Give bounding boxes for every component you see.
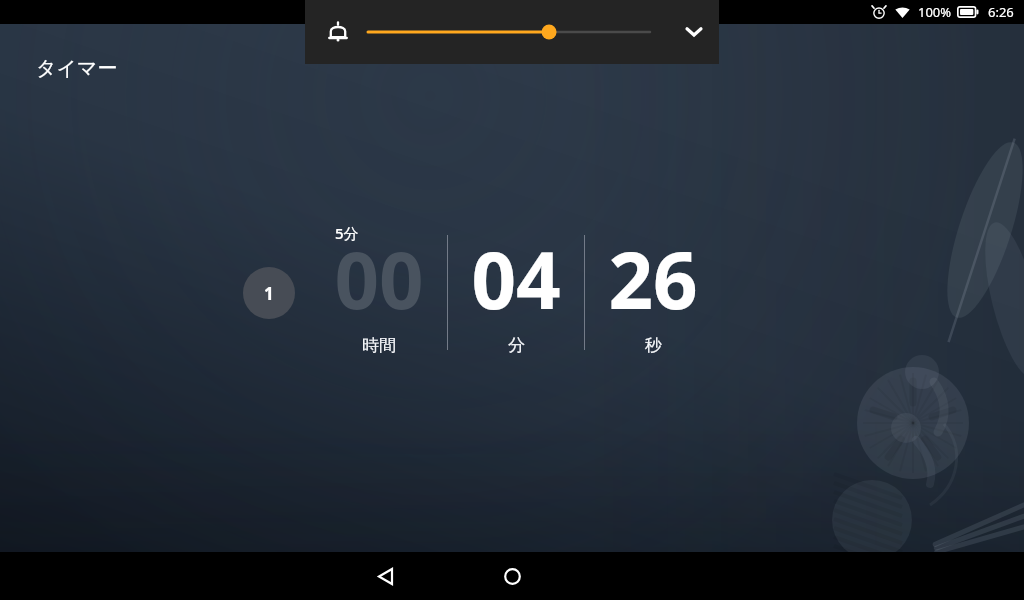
button[interactable]: Ring mode (322, 16, 354, 48)
staticText: 26 (608, 226, 698, 332)
button[interactable]: Home (488, 552, 536, 600)
staticText: 00 (334, 226, 424, 332)
button[interactable]: 04 (426, 226, 606, 356)
staticText: 04 (471, 226, 561, 332)
staticText: 1 (264, 282, 274, 305)
button[interactable]: Expand volume settings (678, 16, 710, 48)
button[interactable]: Volume (360, 14, 660, 50)
button[interactable]: Back (361, 552, 409, 600)
staticText: 時間 (362, 335, 396, 356)
staticText: 6:26 (988, 3, 1014, 21)
staticText: 秒 (645, 335, 662, 356)
button[interactable]: 1 (243, 267, 295, 319)
staticText: 分 (508, 335, 525, 356)
staticText: 5分 (335, 223, 359, 243)
staticText: タイマー (36, 56, 118, 81)
button[interactable]: 00 (289, 226, 469, 356)
button[interactable]: 26 (563, 226, 743, 356)
staticText: 100% (918, 3, 952, 21)
